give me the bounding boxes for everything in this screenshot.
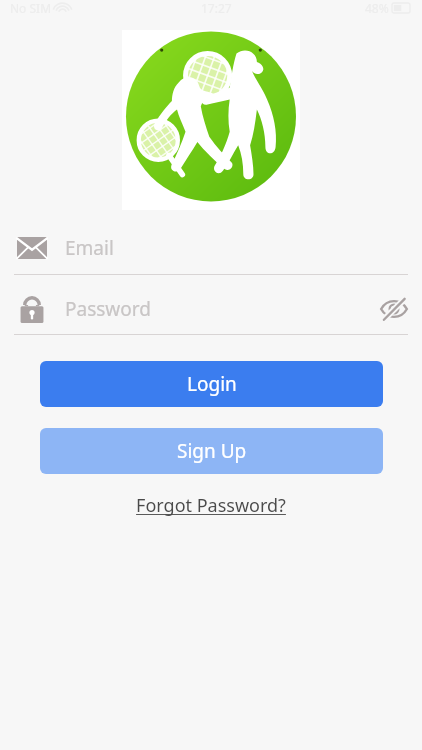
button[interactable]: Password: [65, 296, 372, 322]
staticText: 48%: [365, 0, 389, 16]
staticText: Email: [65, 235, 114, 261]
staticText: 17:27: [201, 0, 232, 16]
button[interactable]: Sign Up: [40, 428, 383, 474]
button[interactable]: Forgot Password?: [128, 491, 294, 520]
staticText: Password: [65, 296, 151, 322]
staticText: Login: [187, 371, 237, 397]
button[interactable]: Show password: [372, 287, 416, 331]
button[interactable]: Login: [40, 361, 383, 407]
button[interactable]: Email: [0, 222, 422, 274]
staticText: Forgot Password?: [136, 493, 286, 518]
staticText: No SIM: [10, 0, 52, 16]
staticText: Sign Up: [177, 438, 247, 464]
